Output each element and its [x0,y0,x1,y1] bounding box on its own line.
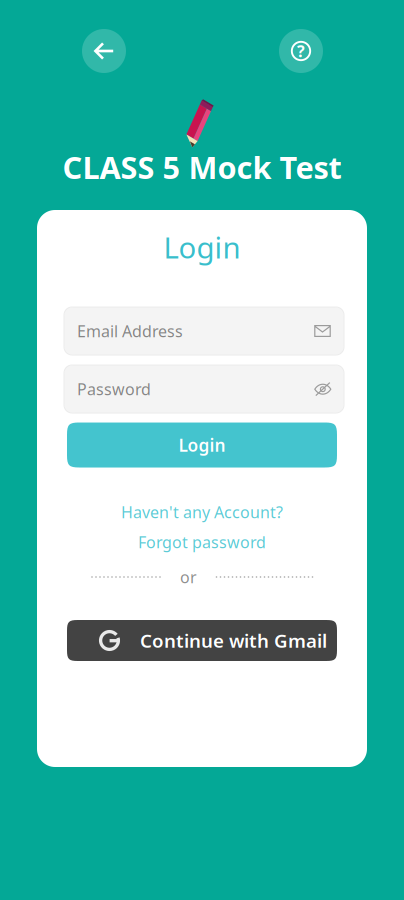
button[interactable]: Help [279,29,323,73]
button[interactable]: Back [82,29,126,73]
staticText: Password [77,378,151,400]
staticText: ? [297,40,305,62]
button[interactable]: Haven't any Account? [102,500,302,524]
staticText: Login [178,433,225,456]
staticText: or [180,566,197,588]
staticText: Forgot password [138,531,266,553]
staticText: Continue with Gmail [140,628,327,653]
staticText: Haven't any Account? [121,501,283,523]
staticText: Email Address [77,320,183,342]
button[interactable]: Continue with Gmail [67,620,337,661]
button[interactable]: Login [67,422,337,467]
staticText: Login [163,227,240,266]
button[interactable]: Forgot password [102,530,302,554]
staticText: CLASS 5 Mock Test [62,147,341,187]
